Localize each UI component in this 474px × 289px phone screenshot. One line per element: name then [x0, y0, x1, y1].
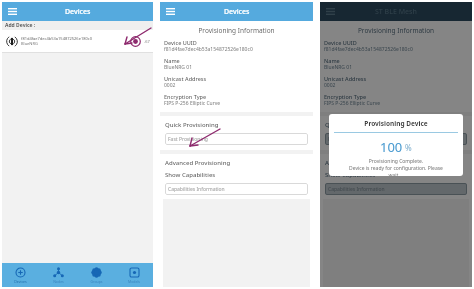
staticText: Nodes: [53, 279, 64, 284]
staticText: Provisioning Complete. Device is ready f…: [333, 158, 459, 176]
staticText: Encryption Type: [324, 93, 367, 100]
staticText: Fast Provisioning: [328, 136, 368, 143]
button[interactable]: Devices: [2, 263, 39, 287]
staticText: Models: [128, 279, 140, 284]
staticText: Encryption Type: [164, 93, 207, 100]
staticText: Unicast Address: [164, 75, 207, 82]
staticText: Devices: [14, 279, 27, 284]
staticText: Groups: [90, 279, 103, 284]
button[interactable]: Menu: [164, 5, 177, 18]
staticText: Add Device :: [5, 22, 36, 29]
button[interactable]: Menu: [6, 5, 19, 18]
button[interactable]: Menu: [324, 5, 337, 18]
staticText: Provisioning Information: [320, 26, 472, 35]
button[interactable]: Nodes: [39, 263, 77, 287]
staticText: f81d4fae7dec4b53a154872526e180c0: [164, 46, 253, 53]
staticText: Devices: [65, 7, 91, 17]
staticText: Show Capabilities: [325, 171, 376, 179]
staticText: Provisioning Device: [329, 119, 463, 128]
staticText: Name: [324, 57, 340, 64]
staticText: Device UUID: [164, 39, 197, 46]
button[interactable]: Provision device: [128, 34, 143, 49]
staticText: Quick Provisioning: [325, 121, 379, 129]
staticText: 0002: [164, 82, 176, 89]
staticText: Capabilities Information: [328, 186, 385, 193]
staticText: Provisioning Information: [160, 26, 313, 35]
staticText: FIPS P-256 Elliptic Curve: [324, 100, 381, 107]
staticText: Show Capabilities: [165, 171, 216, 179]
button[interactable]: f81d4fae7dec4b53a154872526e180c0: [2, 30, 153, 52]
button[interactable]: Models: [115, 263, 153, 287]
staticText: Device UUID: [324, 39, 357, 46]
staticText: FIPS P-256 Elliptic Curve: [164, 100, 221, 107]
staticText: %: [403, 142, 412, 153]
staticText: BlueNRG 01: [164, 64, 193, 71]
button[interactable]: Capabilities Information: [325, 183, 467, 195]
button[interactable]: Capabilities Information: [165, 183, 308, 195]
staticText: -67: [144, 39, 150, 44]
staticText: 100: [380, 138, 403, 156]
staticText: Advanced Provisioning: [325, 159, 391, 167]
staticText: Quick Provisioning: [165, 121, 219, 129]
button[interactable]: Fast Provisioning: [325, 133, 467, 145]
staticText: Fast Provisioning: [168, 136, 208, 143]
staticText: f81d4fae7dec4b53a154872526e180c0: [324, 46, 413, 53]
staticText: BlueNRG 01: [324, 64, 353, 71]
staticText: Name: [164, 57, 180, 64]
button[interactable]: Fast Provisioning: [165, 133, 308, 145]
staticText: ST BLE Mesh: [375, 7, 417, 17]
staticText: 0002: [324, 82, 336, 89]
staticText: Unicast Address: [324, 75, 367, 82]
staticText: Capabilities Information: [168, 186, 225, 193]
staticText: BlueNRG: [21, 41, 38, 46]
staticText: Devices: [224, 7, 250, 17]
staticText: f81d4fae7dec4b53a154872526e180c0: [21, 36, 92, 41]
staticText: Advanced Provisioning: [165, 159, 231, 167]
button[interactable]: Groups: [77, 263, 115, 287]
